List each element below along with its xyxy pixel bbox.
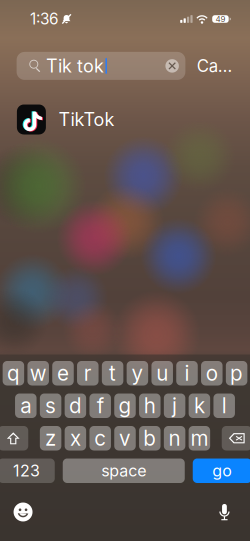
button[interactable]: k: [189, 393, 210, 418]
button[interactable]: space: [63, 458, 185, 483]
button[interactable]: z: [40, 426, 61, 450]
button[interactable]: y: [127, 361, 148, 385]
staticText: x: [70, 426, 81, 451]
staticText: f: [97, 393, 104, 418]
staticText: z: [45, 426, 56, 451]
staticText: d: [69, 393, 82, 418]
staticText: o: [206, 361, 218, 386]
button[interactable]: w: [27, 361, 49, 385]
button[interactable]: b: [139, 426, 161, 450]
button[interactable]: p: [226, 361, 247, 385]
staticText: p: [230, 361, 243, 386]
button[interactable]: 123: [0, 458, 55, 483]
staticText: i: [184, 361, 189, 386]
button[interactable]: j: [164, 393, 185, 418]
button[interactable]: a: [15, 393, 37, 418]
staticText: m: [190, 426, 208, 451]
staticText: w: [30, 361, 47, 386]
button[interactable]: u: [151, 361, 173, 385]
staticText: s: [45, 393, 56, 418]
button[interactable]: x: [65, 426, 86, 450]
button[interactable]: e: [52, 361, 74, 385]
staticText: u: [156, 361, 168, 386]
button[interactable]: r: [77, 361, 99, 385]
button[interactable]: f: [89, 393, 111, 418]
button[interactable]: g: [114, 393, 136, 418]
button[interactable]: o: [201, 361, 223, 385]
button[interactable]: l: [213, 393, 235, 418]
button[interactable]: Tik tok: [17, 52, 185, 80]
staticText: 123: [13, 461, 40, 480]
button[interactable]: TikTok: [0, 104, 250, 134]
button[interactable]: Delete: [222, 426, 250, 450]
staticText: c: [94, 426, 106, 451]
staticText: 49: [215, 14, 225, 24]
staticText: Tik tok: [46, 55, 104, 77]
button[interactable]: h: [139, 393, 161, 418]
button[interactable]: Emoji: [7, 495, 40, 528]
button[interactable]: t: [102, 361, 123, 385]
staticText: e: [57, 361, 69, 386]
button[interactable]: d: [65, 393, 86, 418]
staticText: a: [20, 393, 31, 418]
button[interactable]: n: [164, 426, 185, 450]
button[interactable]: go: [193, 458, 250, 483]
staticText: v: [119, 426, 131, 451]
button[interactable]: v: [114, 426, 136, 450]
button[interactable]: Cancel: [197, 52, 238, 80]
staticText: 1:36: [30, 10, 59, 28]
staticText: q: [7, 361, 20, 386]
staticText: space: [101, 461, 146, 480]
staticText: k: [194, 393, 205, 418]
button[interactable]: c: [89, 426, 111, 450]
button[interactable]: Dictate: [210, 496, 238, 528]
button[interactable]: q: [3, 361, 24, 385]
button[interactable]: s: [40, 393, 61, 418]
staticText: y: [131, 361, 143, 386]
staticText: j: [172, 393, 177, 418]
staticText: t: [109, 361, 116, 386]
staticText: Cancel: [197, 56, 238, 76]
staticText: r: [84, 361, 92, 386]
staticText: n: [169, 426, 181, 451]
staticText: TikTok: [59, 109, 115, 130]
staticText: g: [118, 393, 131, 418]
staticText: go: [212, 461, 232, 480]
staticText: h: [144, 393, 156, 418]
button[interactable]: Shift: [0, 426, 28, 450]
button[interactable]: m: [189, 426, 210, 450]
staticText: l: [222, 393, 227, 418]
staticText: b: [143, 426, 156, 451]
button[interactable]: i: [176, 361, 198, 385]
